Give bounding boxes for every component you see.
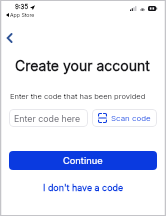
button[interactable]: Enter code here	[9, 109, 88, 127]
staticText: I don't have a code	[43, 182, 124, 193]
staticText: Continue	[63, 155, 103, 166]
staticText: Enter code here	[14, 113, 81, 124]
staticText: App Store	[10, 12, 35, 18]
button[interactable]: Continue	[9, 151, 157, 170]
button[interactable]: Scan code	[92, 109, 157, 127]
button[interactable]: Back	[0, 28, 19, 47]
staticText: Scan code	[111, 113, 151, 123]
staticText: 9:35	[15, 3, 29, 11]
staticText: Create your account	[15, 57, 150, 74]
button[interactable]: I don't have a code	[37, 179, 130, 196]
staticText: Enter the code that has been provided	[10, 92, 146, 101]
